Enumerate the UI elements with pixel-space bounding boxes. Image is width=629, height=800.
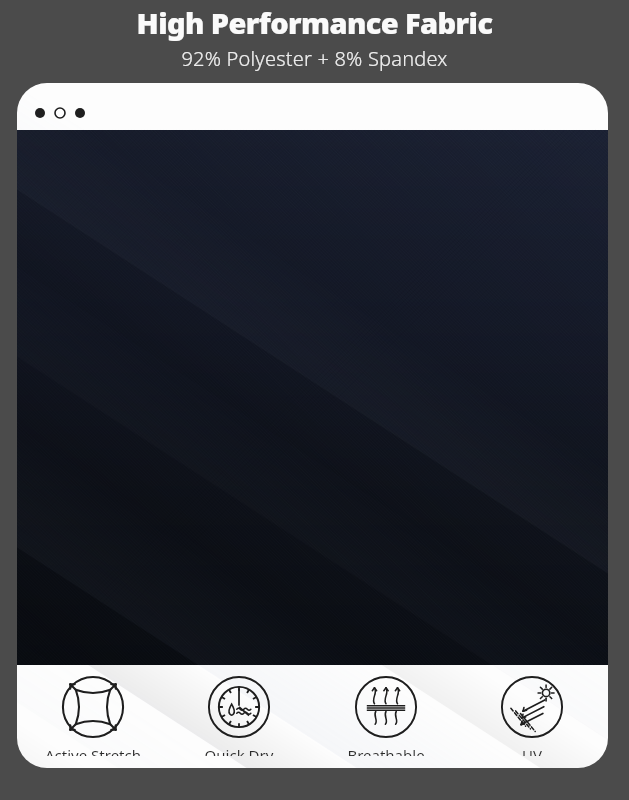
button[interactable]: Quick Dry	[169, 675, 309, 756]
staticText: UV	[462, 745, 602, 756]
button[interactable]: UV	[462, 675, 602, 756]
staticText: Breathable	[316, 745, 456, 756]
button[interactable]: Breathable	[316, 675, 456, 756]
staticText: High Performance Fabric	[0, 3, 629, 42]
staticText: Active Stretch	[23, 745, 163, 756]
button[interactable]: Active Stretch	[23, 675, 163, 756]
staticText: 92% Polyester + 8% Spandex	[0, 45, 629, 72]
staticText: Quick Dry	[169, 745, 309, 756]
